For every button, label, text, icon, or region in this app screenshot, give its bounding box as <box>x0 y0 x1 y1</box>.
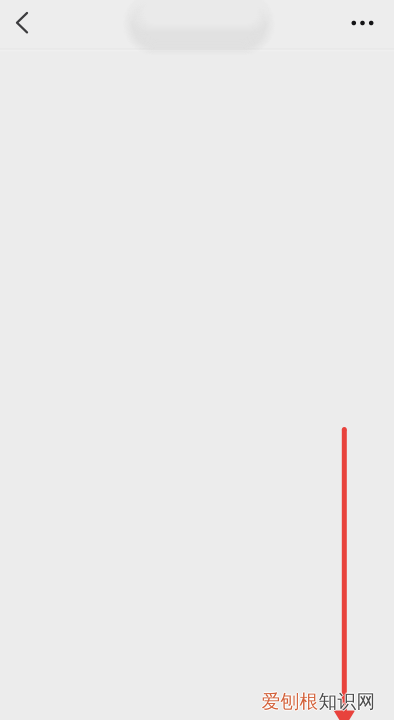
staticText: 爱刨根 <box>260 690 317 713</box>
staticText: 爱刨根 <box>263 690 320 713</box>
staticText: 知识网 <box>318 691 375 714</box>
staticText: 知识网 <box>318 689 375 712</box>
staticText: 爱刨根 <box>261 691 318 714</box>
staticText: 知识网 <box>318 690 375 713</box>
button[interactable]: Back <box>0 1 44 45</box>
button[interactable]: More options <box>340 1 384 45</box>
staticText: 知识网 <box>320 690 377 713</box>
staticText: 爱刨根 <box>261 690 318 713</box>
staticText: 爱刨根 <box>261 689 318 712</box>
staticText: 知识网 <box>317 690 374 713</box>
